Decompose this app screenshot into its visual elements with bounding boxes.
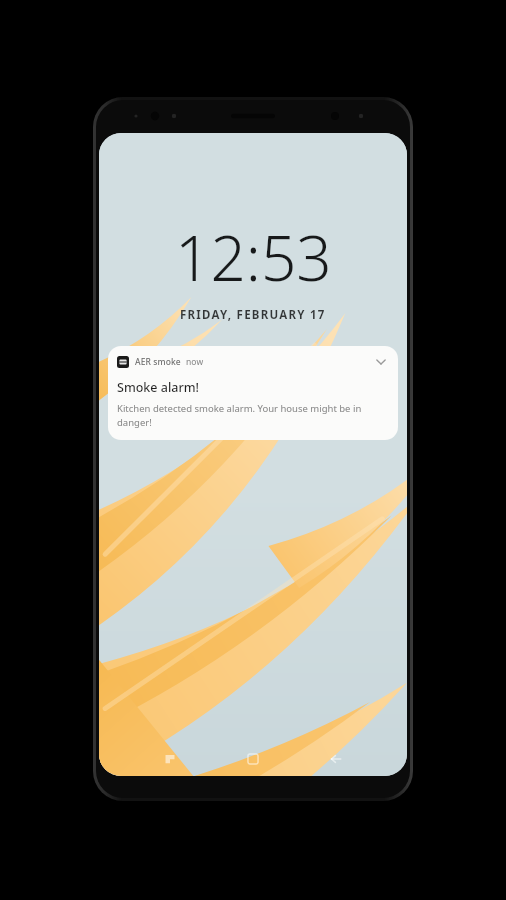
staticText: now — [186, 356, 204, 368]
button[interactable]: AER smoke — [108, 346, 398, 440]
staticText: 12:53 — [175, 215, 332, 299]
staticText: FRIDAY, FEBRUARY 17 — [180, 307, 326, 323]
staticText: AER smoke — [135, 356, 181, 368]
button[interactable]: Expand notification — [373, 354, 389, 370]
staticText: Smoke alarm! — [117, 379, 199, 396]
button[interactable]: Home — [241, 747, 265, 771]
button[interactable]: Recent apps — [158, 747, 182, 771]
staticText: Kitchen detected smoke alarm. Your house… — [117, 402, 377, 429]
button[interactable]: Back — [324, 747, 348, 771]
